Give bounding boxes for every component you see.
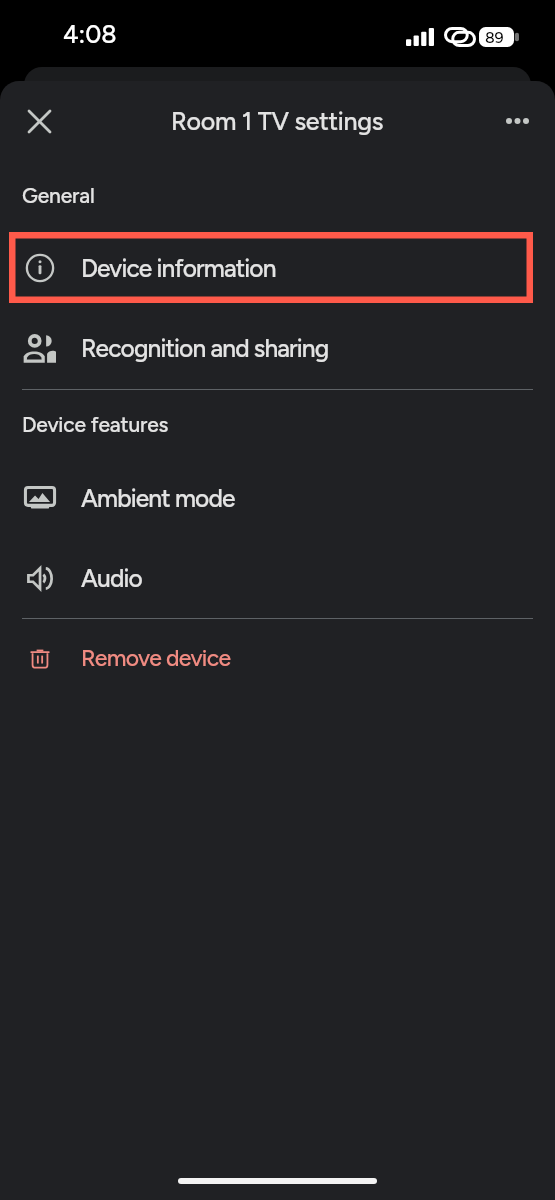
staticText: 4:08: [63, 19, 117, 49]
button[interactable]: More options: [493, 97, 541, 145]
staticText: Remove device: [81, 644, 231, 672]
button[interactable]: Close: [15, 97, 63, 145]
staticText: 89: [485, 28, 504, 47]
staticText: Device information: [81, 254, 276, 283]
staticText: General: [22, 183, 95, 208]
button[interactable]: Ambient mode: [0, 464, 555, 532]
staticText: Ambient mode: [81, 484, 235, 513]
button[interactable]: Recognition and sharing: [0, 314, 555, 382]
staticText: Audio: [81, 564, 142, 593]
staticText: Room 1 TV settings: [171, 106, 384, 136]
button[interactable]: Audio: [0, 544, 555, 612]
button[interactable]: Remove device: [0, 624, 555, 692]
button[interactable]: Device information: [0, 234, 555, 302]
staticText: Recognition and sharing: [81, 334, 329, 363]
staticText: Device features: [22, 412, 169, 437]
